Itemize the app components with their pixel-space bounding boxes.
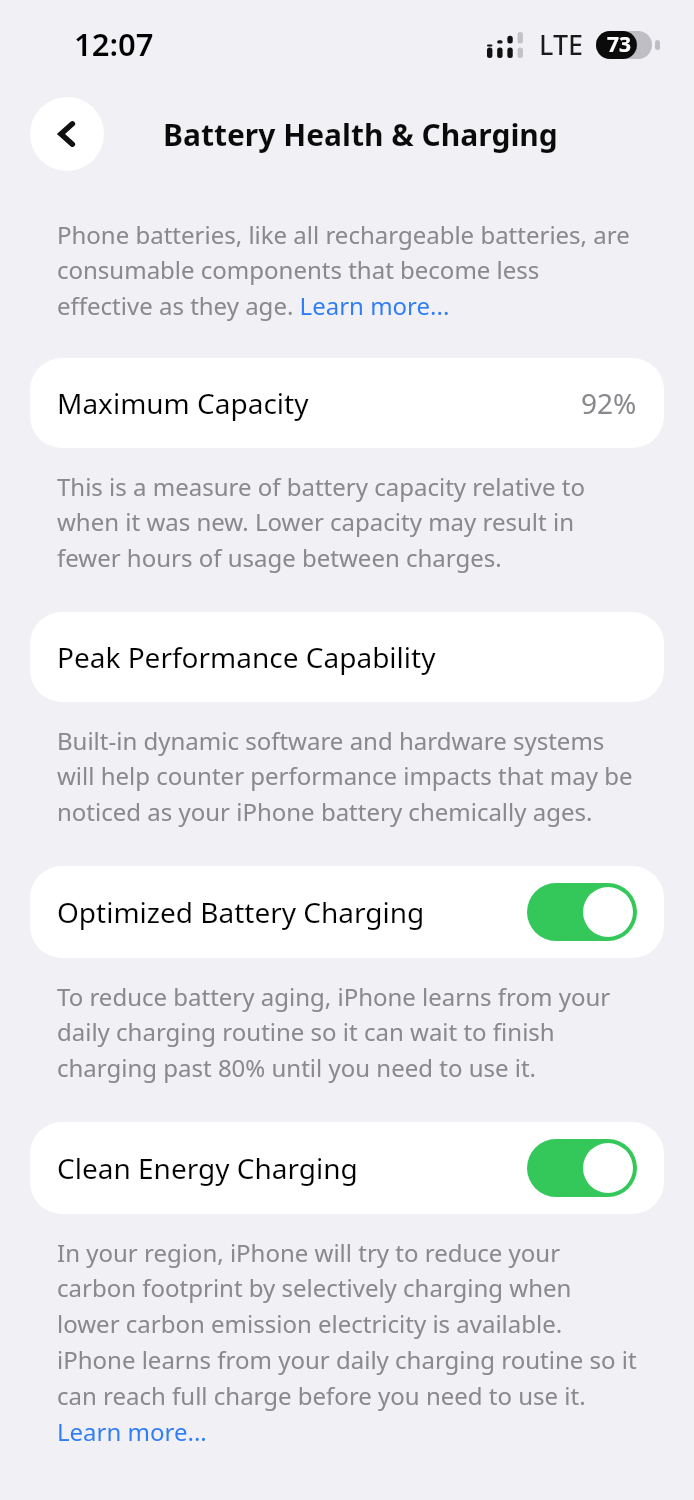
staticText: Phone batteries, like all rechargeable b… [57, 218, 637, 322]
staticText: Built-in dynamic software and hardware s… [57, 724, 637, 828]
staticText: Maximum Capacity [57, 384, 581, 422]
button[interactable]: Peak Performance Capability [30, 612, 664, 702]
staticText: Peak Performance Capability [57, 638, 637, 676]
button[interactable]: Clean Energy Charging [30, 1122, 664, 1214]
staticText: In your region, iPhone will try to reduc… [57, 1236, 637, 1448]
staticText: This is a measure of battery capacity re… [57, 470, 637, 574]
staticText: Optimized Battery Charging [57, 893, 527, 931]
button[interactable]: Maximum Capacity [30, 358, 664, 448]
staticText: 12:07 [74, 23, 154, 65]
button[interactable]: Toggle [527, 1139, 637, 1197]
button[interactable]: Optimized Battery Charging [30, 866, 664, 958]
staticText: LTE [539, 26, 584, 63]
staticText: 73 [607, 30, 632, 59]
staticText: To reduce battery aging, iPhone learns f… [57, 980, 637, 1084]
button[interactable]: Toggle [527, 883, 637, 941]
staticText: Clean Energy Charging [57, 1149, 527, 1187]
staticText: Battery Health & Charging [163, 114, 558, 155]
staticText: 92% [581, 384, 637, 422]
button[interactable]: Back [30, 97, 104, 171]
